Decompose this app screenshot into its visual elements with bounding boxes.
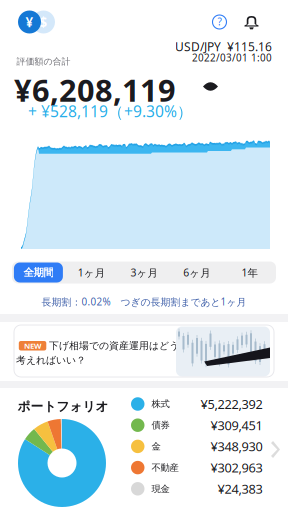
button[interactable]: 6ヶ月 (170, 261, 223, 283)
button[interactable]: Help (209, 12, 229, 32)
staticText: 全期間 (23, 266, 53, 279)
staticText: ¥6,208,119 (14, 69, 176, 111)
button[interactable]: Hide balance (199, 77, 222, 96)
button[interactable]: Notifications (241, 11, 261, 32)
staticText: ¥24,383 (217, 480, 262, 497)
button[interactable]: Portfolio details (264, 434, 287, 465)
button[interactable]: 全期間 (12, 261, 65, 283)
staticText: ¥ (25, 13, 33, 31)
staticText: 2022/03/01 1:00 (192, 51, 272, 64)
staticText: 株式 (151, 398, 169, 410)
staticText: 6ヶ月 (183, 265, 210, 280)
staticText: 現金 (151, 483, 169, 495)
staticText: ¥309,451 (210, 416, 262, 434)
staticText: 評価額の合計 (16, 56, 70, 67)
button[interactable]: Switch to JPY (18, 10, 41, 33)
staticText: ポートフォリオ (17, 398, 108, 414)
staticText: + ¥528,119（+9.30%） (28, 100, 193, 122)
staticText: 考えればいい？ (16, 354, 86, 366)
staticText: ? (217, 15, 221, 28)
staticText: NEW (24, 340, 41, 351)
staticText: 3ヶ月 (130, 265, 157, 280)
staticText: 1ヶ月 (78, 265, 105, 280)
staticText: ¥5,222,392 (200, 395, 262, 413)
staticText: ¥348,930 (210, 438, 262, 455)
staticText: 金 (151, 440, 160, 452)
staticText: 長期割：0.02% つぎの長期割まであと1ヶ月 (41, 295, 246, 308)
staticText: ¥302,963 (210, 459, 262, 476)
button[interactable]: 3ヶ月 (118, 261, 170, 283)
button[interactable]: Switch to USD (32, 10, 55, 33)
staticText: 不動産 (151, 462, 178, 473)
button[interactable]: 1ヶ月 (65, 261, 118, 283)
staticText: 下げ相場での資産運用はどう (49, 339, 179, 352)
staticText: ¥115.16 (227, 38, 272, 55)
staticText: $ (39, 13, 47, 31)
staticText: 1年 (242, 265, 258, 280)
button[interactable]: NEW (14, 325, 274, 377)
staticText: 債券 (151, 419, 169, 431)
staticText: USD/JPY (175, 38, 221, 55)
button[interactable]: 1年 (223, 261, 276, 283)
